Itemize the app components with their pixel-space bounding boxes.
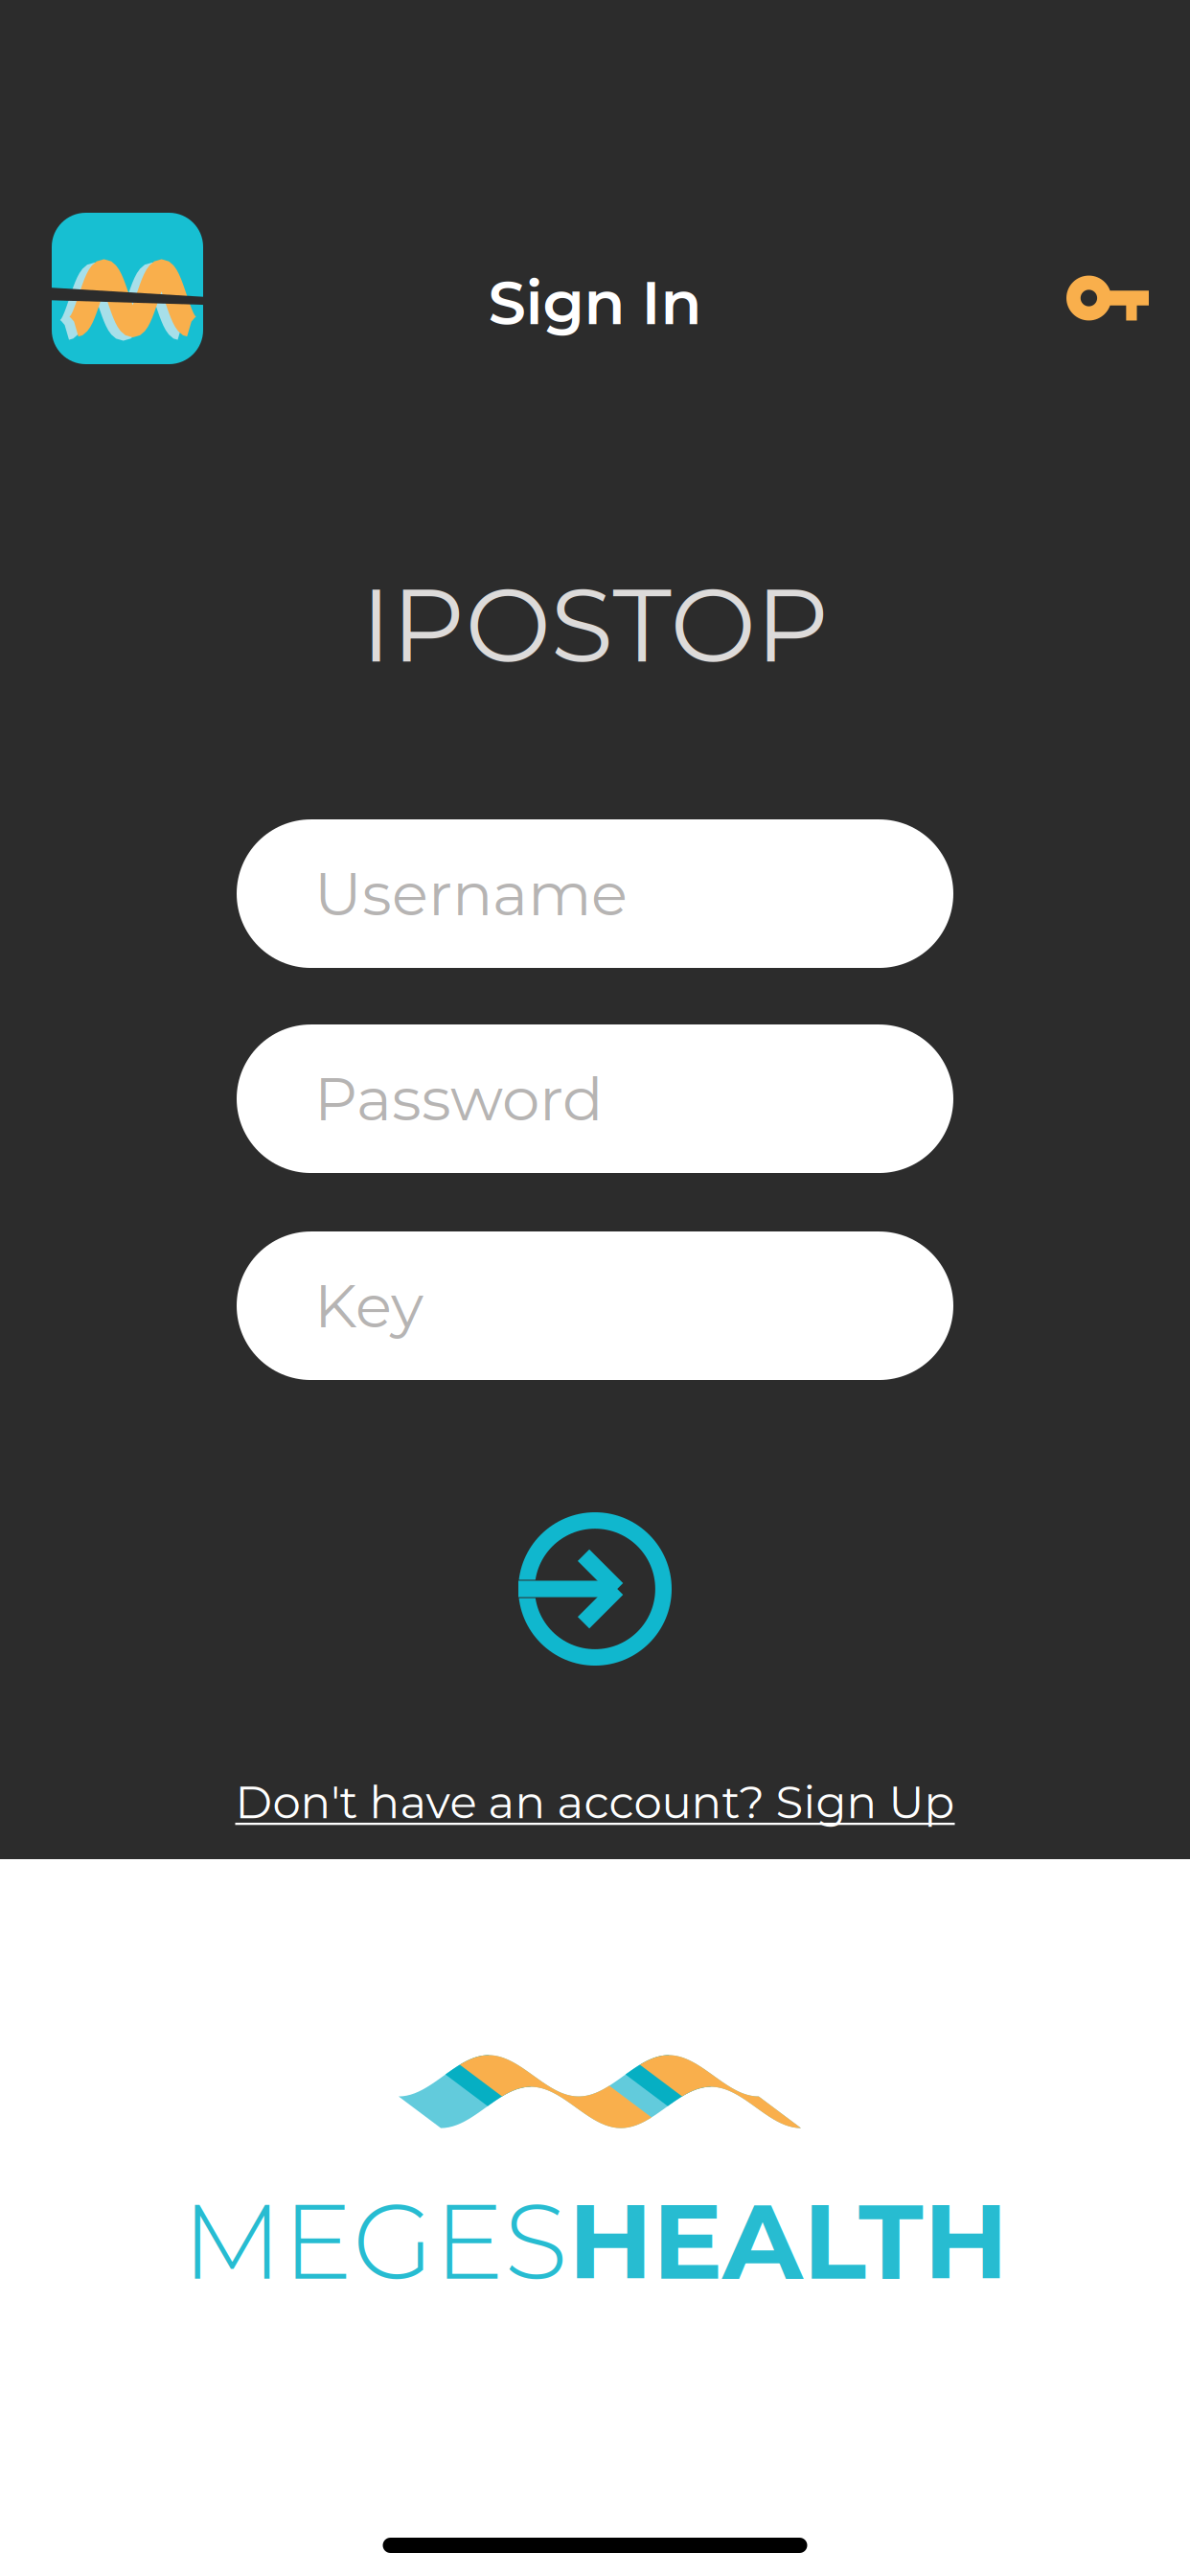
- button[interactable]: App icon: [52, 213, 203, 364]
- staticText: Username: [314, 857, 628, 930]
- button[interactable]: Don't have an account? Sign Up: [235, 1775, 955, 1829]
- staticText: MEGES: [182, 2177, 568, 2305]
- button[interactable]: Key: [1055, 236, 1160, 341]
- staticText: Password: [314, 1062, 603, 1135]
- staticText: Don't have an account? Sign Up: [235, 1775, 955, 1829]
- staticText: HEALTH: [568, 2177, 1008, 2305]
- staticText: Sign In: [488, 266, 702, 339]
- staticText: IPOSTOP: [361, 563, 829, 687]
- staticText: Key: [314, 1269, 423, 1342]
- button[interactable]: Sign In: [499, 1512, 691, 1666]
